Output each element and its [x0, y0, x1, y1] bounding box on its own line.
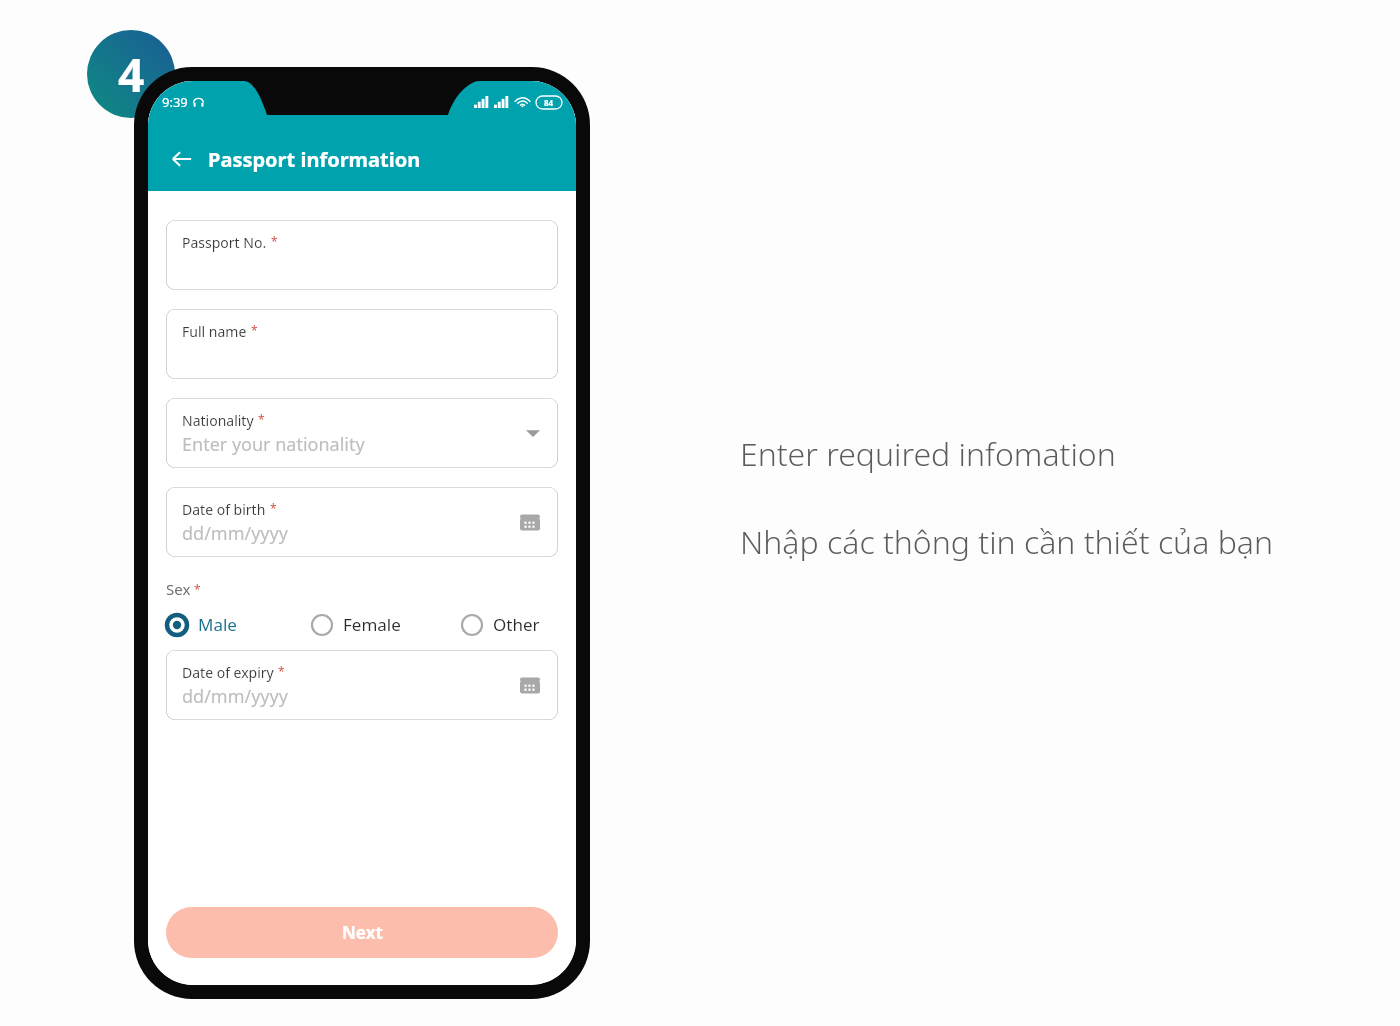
button[interactable]: Date of expiry: [166, 650, 558, 720]
staticText: 4: [118, 43, 145, 106]
staticText: Enter required infomation: [740, 432, 1116, 476]
staticText: Male: [198, 613, 237, 636]
button[interactable]: Back: [162, 139, 202, 179]
staticText: dd/mm/yyyy: [182, 684, 288, 709]
staticText: dd/mm/yyyy: [182, 521, 288, 546]
button[interactable]: Other: [461, 613, 540, 636]
button[interactable]: Full name: [166, 309, 558, 379]
staticText: Passport No.: [182, 233, 267, 252]
button[interactable]: Next: [166, 907, 558, 958]
button[interactable]: Female: [311, 613, 401, 636]
staticText: Enter your nationality: [182, 432, 365, 457]
staticText: Passport information: [208, 146, 421, 173]
staticText: Sex: [166, 579, 191, 599]
staticText: *: [194, 581, 201, 597]
staticText: 9:39: [162, 93, 188, 111]
staticText: *: [251, 322, 258, 338]
staticText: Next: [342, 921, 383, 944]
button[interactable]: Date of birth: [166, 487, 558, 557]
staticText: Nhập các thông tin cần thiết của bạn: [740, 520, 1273, 564]
staticText: Date of birth: [182, 500, 266, 519]
button[interactable]: Nationality: [166, 398, 558, 468]
staticText: *: [278, 663, 285, 679]
staticText: Other: [493, 613, 540, 636]
button[interactable]: Passport No.: [166, 220, 558, 290]
staticText: *: [271, 233, 278, 249]
staticText: Date of expiry: [182, 663, 274, 682]
staticText: 84: [544, 97, 554, 108]
staticText: Female: [343, 613, 401, 636]
staticText: *: [270, 500, 277, 516]
staticText: Full name: [182, 322, 247, 341]
staticText: Nationality: [182, 411, 254, 430]
staticText: *: [258, 411, 265, 427]
button[interactable]: Male: [166, 613, 237, 636]
